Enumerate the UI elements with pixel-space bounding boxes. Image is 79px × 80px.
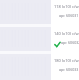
staticText: apr. 606032 (61, 40, 79, 45)
button[interactable]: 140 (x10) c/w (0, 27, 79, 54)
other: Verified (54, 41, 61, 48)
button[interactable]: 180 (x10) c/w (0, 54, 79, 80)
staticText: apr. 606033 (59, 67, 79, 72)
staticText: 180 (x10) c/w (54, 58, 79, 63)
staticText: apr. 606031 (59, 13, 79, 18)
staticText: 140 (x10) c/w (54, 31, 79, 36)
button[interactable]: 118 (x10) c/w (0, 0, 79, 27)
staticText: 118 (x10) c/w (54, 4, 79, 9)
